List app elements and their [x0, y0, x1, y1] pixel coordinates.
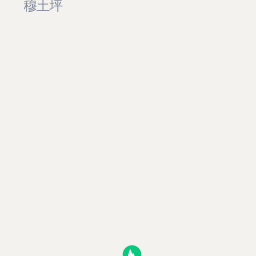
staticText: 穆土坪 [23, 0, 62, 14]
button[interactable]: Locate [123, 245, 141, 256]
